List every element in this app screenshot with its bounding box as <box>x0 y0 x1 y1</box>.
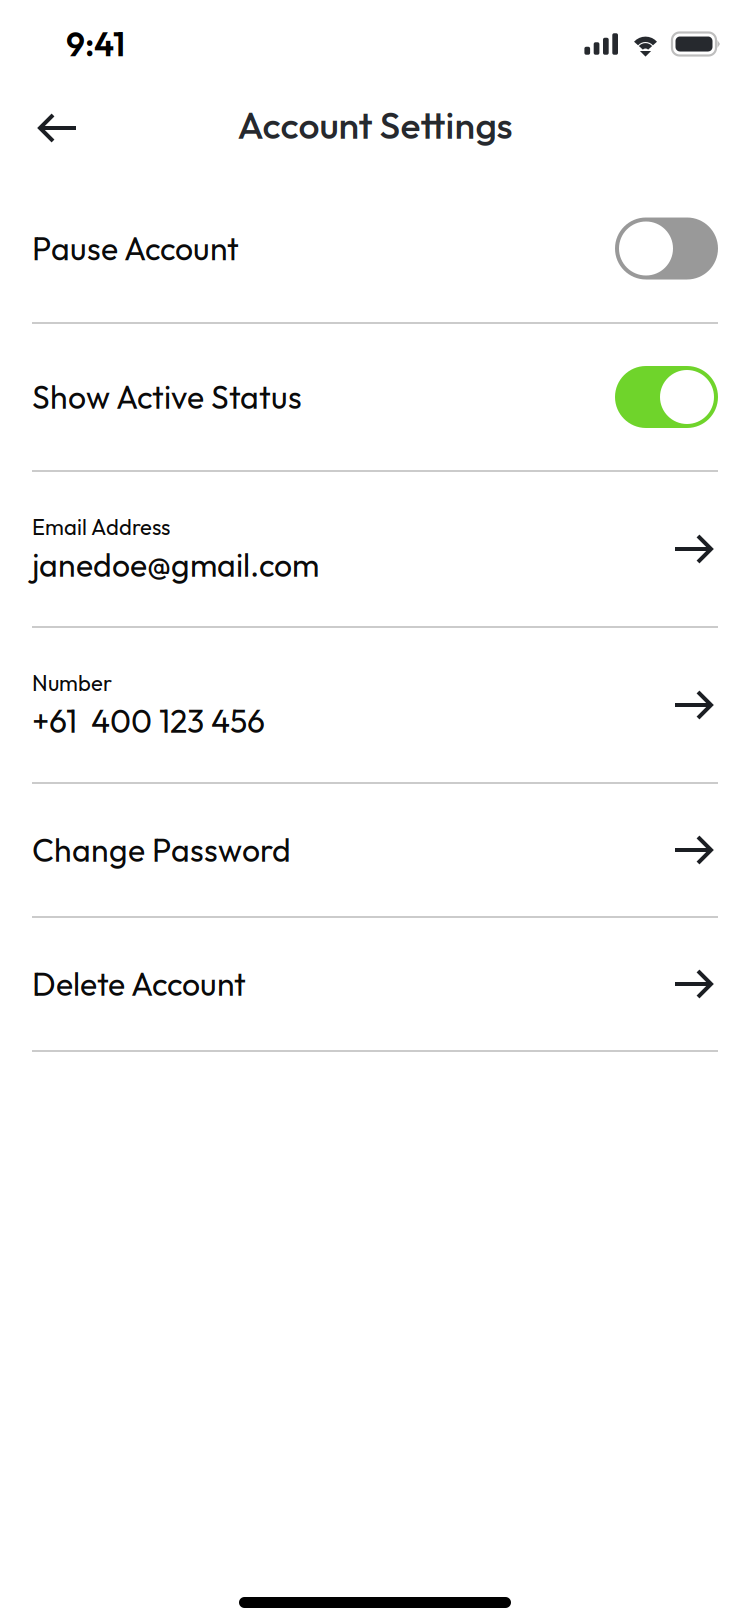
button[interactable]: Back <box>0 94 97 162</box>
staticText: Show Active Status <box>32 377 302 417</box>
button[interactable]: Show Active Status <box>0 324 750 470</box>
staticText: Number <box>32 669 112 697</box>
button[interactable]: Change Password <box>0 784 750 916</box>
staticText: 9:41 <box>66 23 125 65</box>
button[interactable]: Email Address <box>0 472 750 626</box>
staticText: Account Settings <box>237 101 512 148</box>
button[interactable]: Delete Account <box>0 918 750 1050</box>
button[interactable]: Pause Account <box>0 175 750 322</box>
staticText: Delete Account <box>32 964 246 1004</box>
staticText: janedoe@gmail.com <box>32 545 319 585</box>
button[interactable]: Number <box>0 628 750 782</box>
staticText: Email Address <box>32 513 170 541</box>
staticText: +61 400 123 456 <box>32 701 265 741</box>
staticText: Change Password <box>32 830 291 870</box>
staticText: Pause Account <box>32 228 239 269</box>
